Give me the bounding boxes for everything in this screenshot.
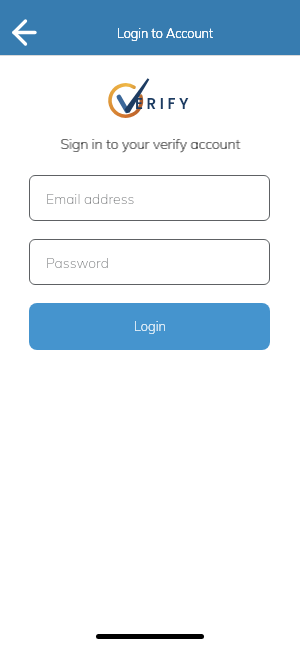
staticText: Login to Account (117, 25, 214, 41)
button[interactable]: Email address (29, 175, 270, 221)
staticText: Sign in to your verify account (61, 135, 241, 153)
button[interactable]: Password (29, 239, 270, 285)
staticText: Login to Account (117, 25, 214, 41)
button[interactable] (6, 17, 42, 49)
staticText: ERIFY (135, 93, 193, 114)
staticText: Login (134, 318, 166, 334)
button[interactable]: Login (29, 303, 270, 350)
staticText: Sign in to your verify account (60, 135, 240, 153)
staticText: Password (46, 254, 109, 272)
staticText: Email address (46, 190, 135, 208)
